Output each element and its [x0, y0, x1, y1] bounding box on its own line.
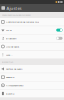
staticText: Administración de tarjetas SIM — [6, 20, 39, 24]
button[interactable]: Bluetooth — [0, 34, 64, 43]
button[interactable]: Administración de tarjetas SIM — [0, 18, 64, 26]
staticText: Perfiles de audio — [6, 67, 22, 71]
button[interactable]: Wi-Fi — [0, 26, 64, 34]
button[interactable]: Batería — [0, 90, 64, 98]
staticText: DISPOSITIVO — [2, 61, 13, 63]
staticText: Almacenamiento — [6, 84, 23, 87]
staticText: Más... — [6, 53, 13, 56]
staticText: Uso de datos — [6, 45, 19, 48]
staticText: CONEXIONES INALÁMBRICAS Y REDES — [2, 14, 31, 16]
staticText: Wi-Fi — [6, 28, 12, 32]
button[interactable]: Perfiles de audio — [0, 65, 64, 73]
button[interactable]: Más... — [0, 51, 64, 59]
staticText: Bluetooth — [6, 37, 16, 40]
staticText: Ajustes — [7, 5, 22, 11]
button[interactable]: Almacenamiento — [0, 81, 64, 90]
staticText: Pantalla — [6, 75, 14, 79]
button[interactable]: Uso de datos — [0, 43, 64, 51]
button[interactable]: Pantalla — [0, 73, 64, 81]
staticText: Batería — [6, 92, 14, 95]
button[interactable]: Ajustes — [0, 4, 64, 12]
